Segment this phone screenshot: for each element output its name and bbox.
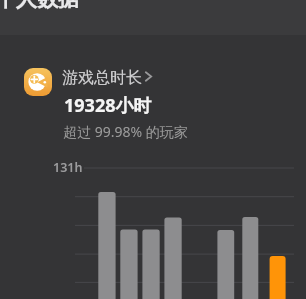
staticText: 超过 99.98% 的玩家 [63, 122, 188, 141]
staticText: 131h [53, 159, 83, 176]
staticText: 个人数据 [0, 0, 79, 12]
staticText: 19328小时 [64, 93, 152, 118]
button[interactable]: 游戏总时长 [23, 62, 195, 142]
staticText: 游戏总时长 [62, 68, 142, 88]
